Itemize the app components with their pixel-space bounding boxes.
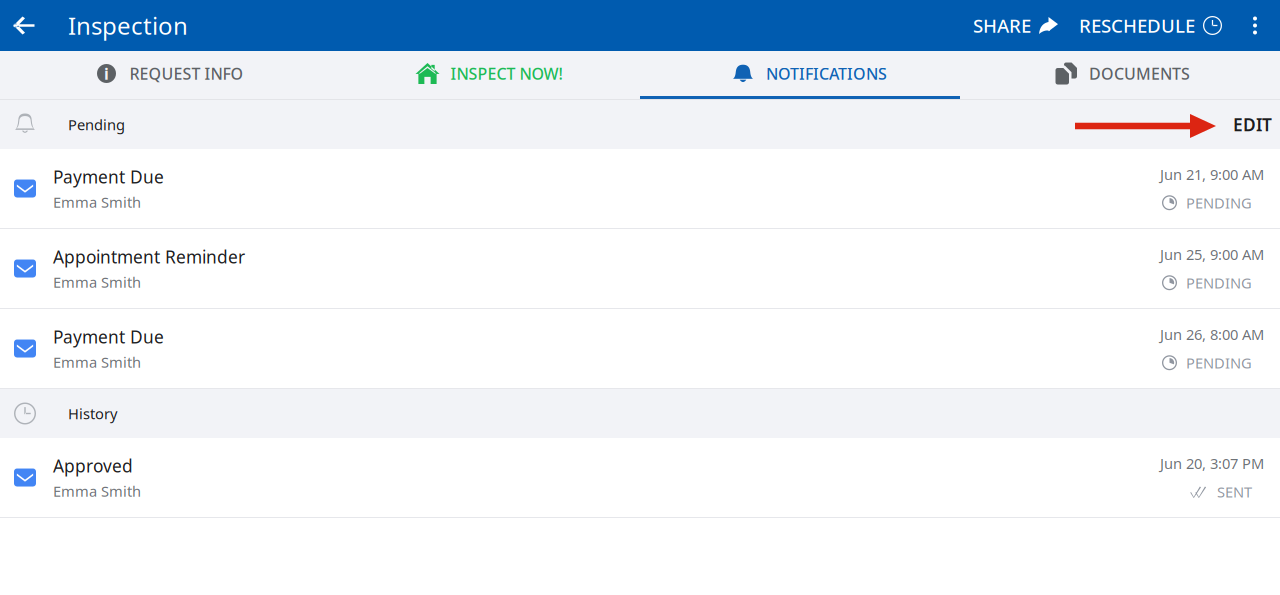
staticText: Payment Due xyxy=(53,325,164,348)
staticText: Jun 20, 3:07 PM xyxy=(1160,453,1264,473)
staticText: Emma Smith xyxy=(53,272,141,292)
staticText: INSPECT NOW! xyxy=(450,63,562,84)
button[interactable]: EDIT xyxy=(1216,100,1280,149)
staticText: DOCUMENTS xyxy=(1089,63,1190,84)
staticText: Jun 25, 9:00 AM xyxy=(1160,244,1264,264)
staticText: EDIT xyxy=(1233,113,1272,136)
button[interactable]: More options xyxy=(1230,0,1280,51)
button[interactable]: Approved xyxy=(0,438,1280,518)
button[interactable]: DOCUMENTS xyxy=(960,51,1280,99)
button[interactable]: SHARE xyxy=(973,0,1069,51)
staticText: PENDING xyxy=(1186,353,1252,372)
staticText: PENDING xyxy=(1186,193,1252,212)
staticText: REQUEST INFO xyxy=(129,63,243,84)
staticText: Emma Smith xyxy=(53,192,141,212)
staticText: Emma Smith xyxy=(53,481,141,501)
staticText: Pending xyxy=(68,115,125,134)
button[interactable]: Payment Due xyxy=(0,309,1280,389)
staticText: Jun 21, 9:00 AM xyxy=(1160,164,1264,184)
staticText: History xyxy=(68,404,117,423)
staticText: Inspection xyxy=(68,10,188,41)
button[interactable]: Back xyxy=(0,0,48,51)
button[interactable]: Appointment Reminder xyxy=(0,229,1280,309)
staticText: Jun 26, 8:00 AM xyxy=(1160,324,1264,344)
staticText: NOTIFICATIONS xyxy=(766,63,887,84)
staticText: Approved xyxy=(53,454,133,477)
staticText: SENT xyxy=(1217,482,1252,501)
staticText: SHARE xyxy=(973,13,1031,38)
button[interactable]: i xyxy=(0,51,320,99)
button[interactable]: Payment Due xyxy=(0,149,1280,229)
staticText: i xyxy=(104,63,109,84)
staticText: Payment Due xyxy=(53,165,164,188)
staticText: Appointment Reminder xyxy=(53,245,245,268)
button[interactable]: NOTIFICATIONS xyxy=(640,51,960,99)
staticText: PENDING xyxy=(1186,273,1252,292)
staticText: Emma Smith xyxy=(53,352,141,372)
staticText: RESCHEDULE xyxy=(1079,13,1195,38)
button[interactable]: INSPECT NOW! xyxy=(320,51,640,99)
button[interactable]: RESCHEDULE xyxy=(1069,0,1230,51)
